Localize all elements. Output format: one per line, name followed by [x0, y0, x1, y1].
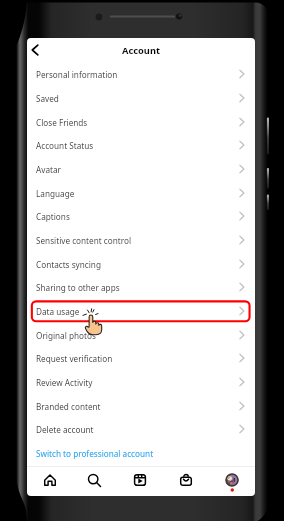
button[interactable]: Saved	[27, 86, 255, 110]
button[interactable]: Sensitive content control	[27, 228, 255, 252]
staticText: Sensitive content control	[36, 235, 132, 246]
staticText: Delete account	[36, 424, 94, 435]
button[interactable]: Switch to professional account	[27, 441, 255, 465]
staticText: Branded content	[36, 401, 101, 412]
button[interactable]: Branded content	[27, 394, 255, 418]
button[interactable]: Contacts syncing	[27, 252, 255, 276]
button[interactable]: Sharing to other apps	[27, 275, 255, 299]
staticText: Avatar	[36, 164, 61, 175]
staticText: Captions	[36, 211, 70, 222]
staticText: Request verification	[36, 353, 113, 364]
staticText: Close Friends	[36, 117, 88, 128]
button[interactable]: Back	[27, 41, 45, 59]
staticText: Data usage	[36, 306, 80, 317]
button[interactable]: Account Status	[27, 133, 255, 157]
staticText: Account Status	[36, 140, 94, 151]
staticText: Sharing to other apps	[36, 282, 120, 293]
staticText: Original photos	[36, 330, 96, 341]
button[interactable]: Profile	[209, 467, 255, 496]
button[interactable]: Review Activity	[27, 370, 255, 394]
button[interactable]: Language	[27, 181, 255, 205]
button[interactable]: Captions	[27, 204, 255, 228]
button[interactable]: Close Friends	[27, 110, 255, 134]
button[interactable]: Avatar	[27, 157, 255, 181]
staticText: Personal information	[36, 69, 118, 80]
button[interactable]: Personal information	[27, 62, 255, 86]
button[interactable]: Reels	[117, 467, 163, 496]
staticText: Contacts syncing	[36, 259, 101, 270]
button[interactable]: Home	[27, 467, 72, 496]
staticText: Account	[122, 44, 160, 57]
staticText: Saved	[36, 93, 59, 104]
staticText: Review Activity	[36, 377, 93, 388]
button[interactable]: Data usage	[27, 299, 255, 323]
button[interactable]: Search	[72, 467, 117, 496]
staticText: Language	[36, 188, 75, 199]
button[interactable]: Original photos	[27, 323, 255, 347]
staticText: Switch to professional account	[36, 448, 154, 459]
button[interactable]: Request verification	[27, 346, 255, 370]
button[interactable]: Delete account	[27, 417, 255, 441]
button[interactable]: Shop	[163, 467, 209, 496]
